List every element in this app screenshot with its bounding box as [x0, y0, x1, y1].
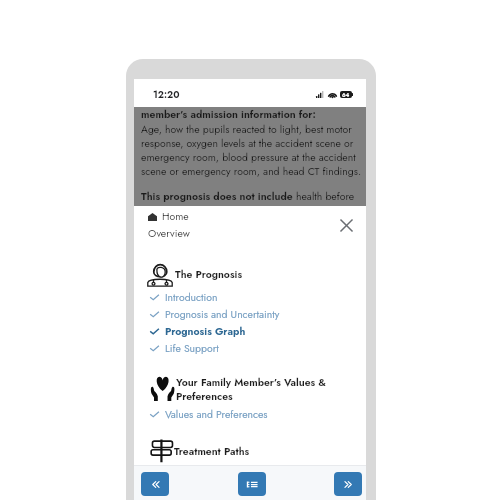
staticText: member’s admission information for:	[141, 107, 316, 122]
staticText: 64	[342, 91, 350, 98]
staticText: Treatment Paths	[174, 444, 250, 459]
button[interactable]: The Prognosis	[147, 259, 243, 289]
staticText: Home	[162, 209, 189, 224]
staticText: Introduction	[165, 290, 218, 305]
button[interactable]: Life Support	[150, 340, 366, 356]
staticText: This prognosis does not include	[141, 189, 296, 204]
button[interactable]: Next section	[334, 472, 362, 496]
button[interactable]: Prognosis and Uncertainty	[150, 306, 366, 322]
staticText: The Prognosis	[175, 267, 243, 282]
button[interactable]: Introduction	[150, 289, 366, 305]
staticText: Values and Preferences	[165, 407, 268, 422]
button[interactable]: Your Family Member’s Values & Preference…	[147, 369, 328, 409]
button[interactable]: Close	[336, 215, 356, 235]
staticText: Prognosis Graph	[165, 324, 246, 339]
staticText: 12:20	[153, 88, 180, 102]
staticText: Prognosis and Uncertainty	[165, 307, 280, 322]
staticText: Your Family Member’s Values & Preference…	[176, 375, 328, 404]
button[interactable]: Values and Preferences	[150, 406, 366, 422]
staticText: Overview	[148, 226, 190, 241]
button[interactable]: Treatment Paths	[147, 436, 250, 466]
button[interactable]: Table of contents	[238, 472, 266, 496]
staticText: health before	[296, 189, 355, 204]
button[interactable]: Prognosis Graph	[150, 323, 366, 339]
button[interactable]: Previous section	[141, 472, 169, 496]
button[interactable]: Home	[148, 209, 189, 224]
staticText: Age, how the pupils reacted to light, be…	[141, 122, 363, 179]
staticText: Life Support	[165, 341, 219, 356]
